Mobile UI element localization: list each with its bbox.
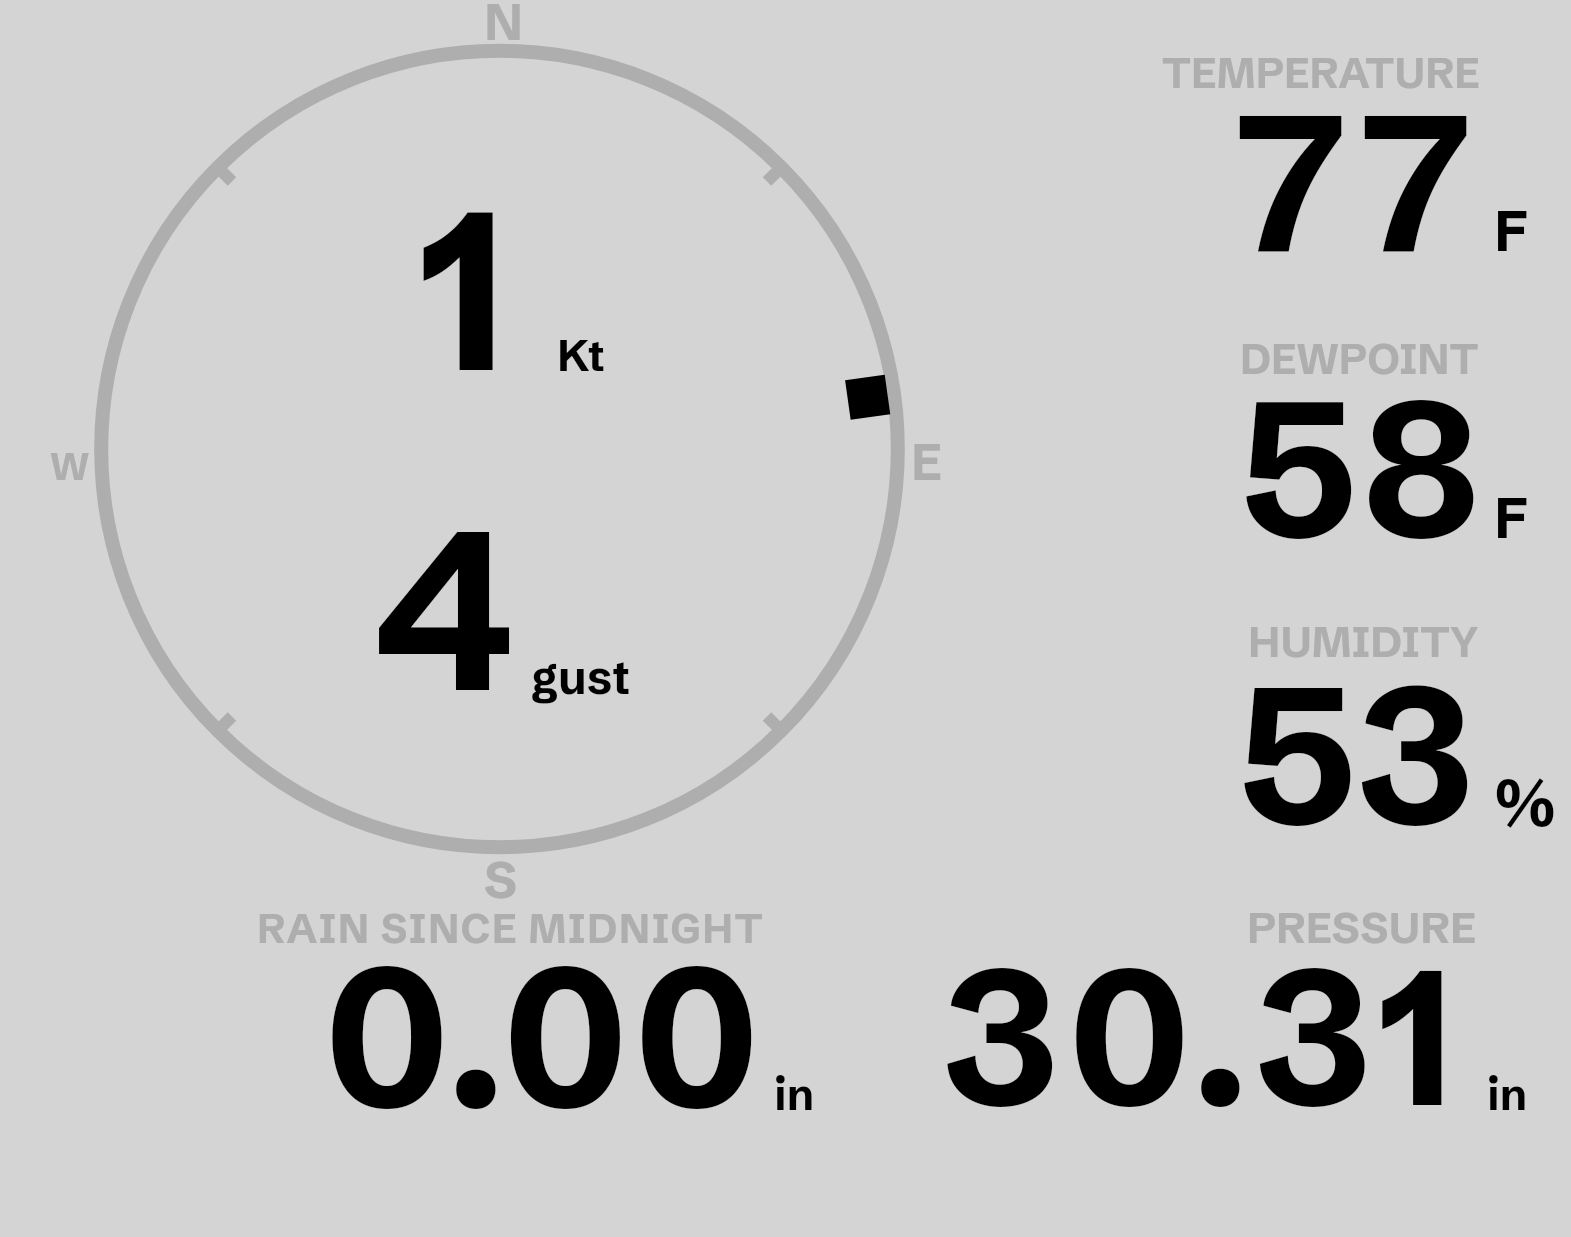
- staticText: 53: [1238, 636, 1474, 873]
- staticText: 58: [1240, 351, 1481, 586]
- staticText: in: [774, 1066, 815, 1122]
- staticText: F: [1494, 194, 1528, 266]
- staticText: Kt: [557, 327, 605, 383]
- staticText: 30.31: [943, 918, 1462, 1154]
- staticText: TEMPERATURE: [1162, 47, 1480, 99]
- staticText: RAIN SINCE MIDNIGHT: [257, 903, 765, 954]
- staticText: HUMIDITY: [1248, 615, 1479, 668]
- staticText: 7: [1361, 63, 1471, 300]
- staticText: gust: [531, 648, 631, 706]
- staticText: DEWPOINT: [1240, 333, 1479, 385]
- staticText: %: [1495, 762, 1556, 843]
- staticText: in: [1487, 1066, 1528, 1122]
- staticText: 0.00: [325, 916, 762, 1158]
- staticText: W: [50, 442, 90, 490]
- staticText: S: [484, 848, 518, 911]
- staticText: 1: [418, 152, 509, 427]
- staticText: 4: [374, 472, 514, 747]
- staticText: N: [484, 0, 524, 53]
- staticText: PRESSURE: [1247, 901, 1476, 954]
- other: Wind direction compass: [0, 0, 1571, 1237]
- staticText: E: [911, 430, 942, 493]
- staticText: F: [1494, 481, 1528, 553]
- staticText: 7: [1236, 63, 1346, 300]
